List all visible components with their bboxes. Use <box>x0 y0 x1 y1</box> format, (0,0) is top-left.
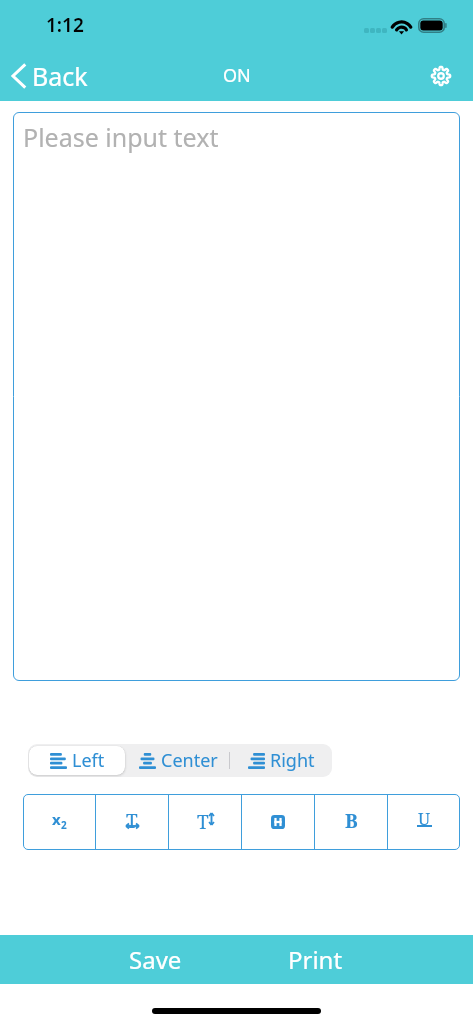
staticText: Right <box>270 748 315 773</box>
staticText: Save <box>129 943 182 976</box>
staticText: Back <box>32 59 88 93</box>
button[interactable]: Back <box>0 59 96 93</box>
staticText: T <box>126 808 138 834</box>
staticText: Center <box>161 748 218 773</box>
staticText: ON <box>223 63 251 88</box>
button[interactable]: Center <box>126 744 230 777</box>
button[interactable]: Right <box>230 744 332 777</box>
button[interactable]: sub <box>23 794 95 850</box>
button[interactable]: Please input text <box>13 112 460 681</box>
staticText: U <box>418 807 431 830</box>
button[interactable]: B <box>314 794 387 850</box>
button[interactable]: U <box>387 794 460 850</box>
button[interactable]: spacing <box>95 794 168 850</box>
button[interactable]: lineheight <box>168 794 241 850</box>
staticText: Print <box>288 943 343 976</box>
staticText: x <box>52 809 61 829</box>
button[interactable]: H <box>241 794 314 850</box>
staticText: Please input text <box>23 120 219 154</box>
button[interactable]: Left <box>28 744 126 777</box>
button[interactable]: Save <box>106 935 204 984</box>
staticText: T <box>197 809 209 835</box>
button[interactable]: Settings <box>426 61 456 91</box>
staticText: 1:12 <box>46 12 84 38</box>
button[interactable]: Print <box>266 935 364 984</box>
staticText: B <box>345 808 358 834</box>
staticText: Left <box>72 748 105 773</box>
staticText: 2 <box>61 818 67 832</box>
